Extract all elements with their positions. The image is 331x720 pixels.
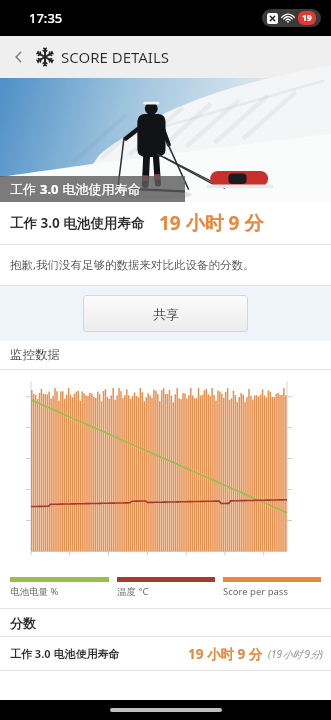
staticText: SCORE DETAILS [61, 47, 170, 67]
staticText: 分数 [10, 615, 36, 631]
staticText: 工作 3.0 电池使用寿命 [10, 214, 145, 232]
staticText: 19 小时 9 分 [188, 645, 263, 663]
staticText: 电池电量 % [10, 585, 59, 598]
button[interactable]: 工作 [0, 78, 331, 202]
staticText: 抱歉,我们没有足够的数据来对比此设备的分数。 [10, 257, 255, 273]
staticText: 温度 °C [117, 585, 149, 598]
staticText: 工作 3.0 电池使用寿命 [10, 646, 120, 661]
staticText: 19 小时 9 分 [159, 210, 264, 236]
button[interactable]: 抱歉,我们没有足够的数据来对比此设备的分数。 [0, 245, 331, 285]
button[interactable]: Back [2, 40, 36, 74]
staticText: 17:35 [29, 9, 63, 27]
staticText: 19 [302, 12, 312, 24]
staticText: (19小时 9分) [268, 647, 323, 661]
staticText: 电池使用寿命 [59, 180, 141, 198]
button[interactable]: 工作 3.0 电池使用寿命 [0, 202, 331, 244]
button[interactable]: 共享 [83, 295, 248, 332]
staticText: Score per pass [223, 585, 288, 598]
staticText: 工作 [10, 180, 40, 198]
staticText: 3.0 [40, 180, 59, 198]
staticText: 共享 [153, 306, 179, 322]
button[interactable]: 工作 3.0 电池使用寿命 [0, 637, 331, 670]
staticText: 监控数据 [10, 347, 60, 363]
